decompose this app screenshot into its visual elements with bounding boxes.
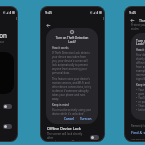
button[interactable]: Cancel <box>62 116 76 122</box>
staticText: Remotely lock your device <box>131 124 145 128</box>
staticText: 9:45 <box>45 10 53 15</box>
button[interactable]: Toggle setting <box>3 104 12 109</box>
button[interactable]: Toggle setting <box>3 124 12 129</box>
staticText: Turn on Offline Device Lock? <box>136 38 145 46</box>
staticText: Keep in mind <box>52 103 92 107</box>
button[interactable]: Turn on <box>78 116 94 122</box>
staticText: Use Find My Device to lock it <box>131 137 145 140</box>
staticText: This feature uses your device's motion s… <box>52 77 92 101</box>
staticText: Protect your personal data if your devic… <box>0 40 5 48</box>
staticText: • Your device will lock when it • goes o… <box>136 88 145 112</box>
staticText: Cancel <box>64 117 74 121</box>
staticText: Your device's screen will lock shortly a… <box>136 53 145 81</box>
staticText: You must be actively using your device w… <box>52 108 92 116</box>
staticText: If Theft Detection Lock detects your dev… <box>52 51 92 75</box>
button[interactable]: Offline Device Lock <box>0 119 17 133</box>
staticText: How it works <box>136 48 145 52</box>
staticText: How it works <box>52 46 92 50</box>
staticText: 9:45 <box>129 10 137 15</box>
button[interactable]: Back <box>129 17 136 24</box>
staticText: Protect your personal data if your devic… <box>131 23 145 31</box>
staticText: Theft protection <box>139 18 145 23</box>
staticText: Keep in mind <box>136 83 145 87</box>
staticText: Offline Device Lock <box>47 126 81 131</box>
staticText: Turn on <box>80 117 92 121</box>
button[interactable]: Theft Detection Lock <box>0 99 17 113</box>
button[interactable]: Toggle setting <box>90 135 99 140</box>
staticText: Turn on Theft Detection Lock? <box>52 36 92 44</box>
staticText: Theft protection <box>0 31 7 39</box>
button[interactable]: Offline Device Lock <box>41 126 104 141</box>
button[interactable]: Back <box>45 22 52 29</box>
staticText: The screen will lock shortly after your … <box>47 132 87 141</box>
staticText: Find & secure <box>131 130 145 135</box>
